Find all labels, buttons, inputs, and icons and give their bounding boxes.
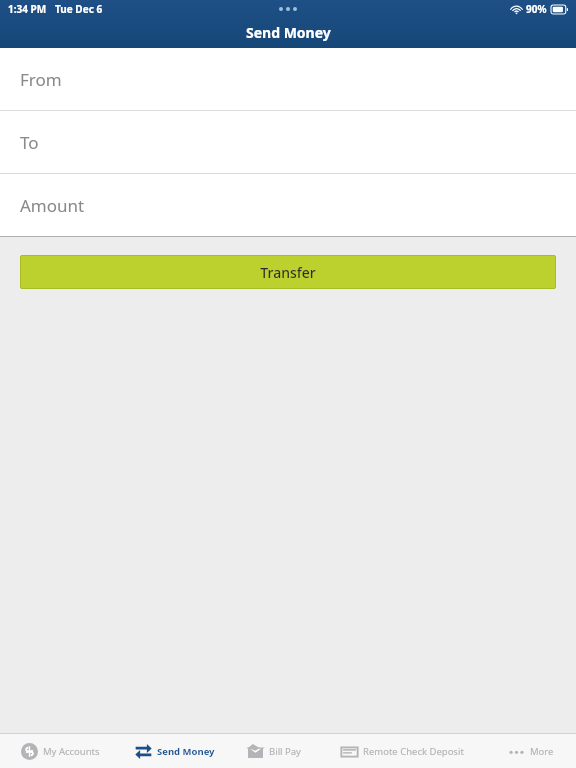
button[interactable]: Bill Pay — [229, 734, 319, 768]
other: Wi-Fi — [511, 5, 522, 14]
other: Battery 90 percent — [551, 5, 568, 14]
staticText: Send Money — [246, 23, 331, 42]
staticText: More — [530, 745, 554, 758]
button[interactable]: From — [0, 48, 576, 110]
staticText: Tue Dec 6 — [55, 2, 103, 16]
staticText: Transfer — [260, 263, 316, 282]
button[interactable]: To — [0, 111, 576, 173]
staticText: Bill Pay — [269, 745, 301, 758]
staticText: 90% — [526, 2, 547, 16]
staticText: My Accounts — [43, 745, 100, 758]
button[interactable]: Send Money — [120, 734, 229, 768]
staticText: Send Money — [157, 745, 215, 758]
staticText: Remote Check Deposit — [363, 745, 464, 758]
button[interactable]: Remote Check Deposit — [319, 734, 486, 768]
button[interactable]: My Accounts — [0, 734, 120, 768]
staticText: From — [20, 68, 62, 91]
button[interactable]: Transfer — [20, 255, 556, 289]
staticText: Amount — [20, 194, 85, 217]
button[interactable]: More — [486, 734, 576, 768]
staticText: To — [20, 131, 39, 154]
button[interactable]: Amount — [0, 174, 576, 236]
staticText: 1:34 PM — [8, 2, 47, 16]
